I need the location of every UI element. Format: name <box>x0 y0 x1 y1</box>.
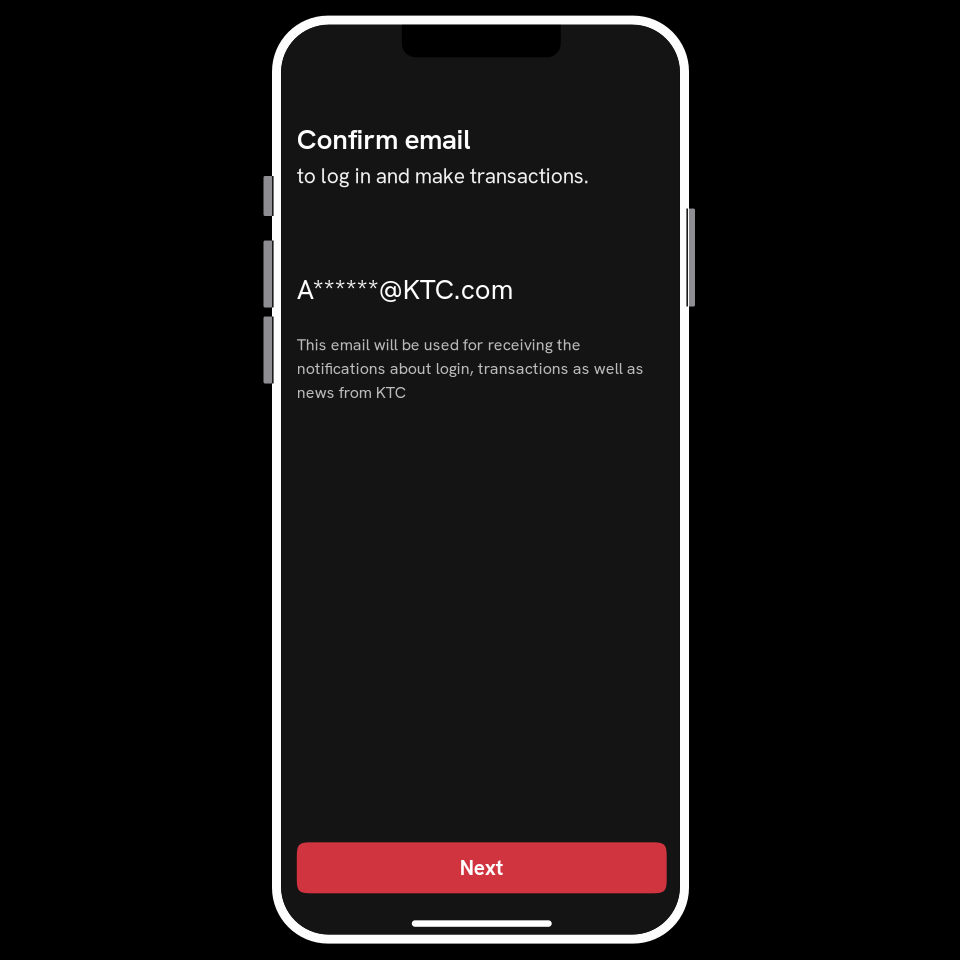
staticText: Next <box>460 854 504 881</box>
staticText: Confirm email <box>297 121 471 157</box>
staticText: to log in and make transactions. <box>297 162 589 190</box>
staticText: A******@KTC.com <box>297 272 514 307</box>
staticText: This email will be used for receiving th… <box>297 334 644 403</box>
button[interactable]: Next <box>297 842 667 893</box>
